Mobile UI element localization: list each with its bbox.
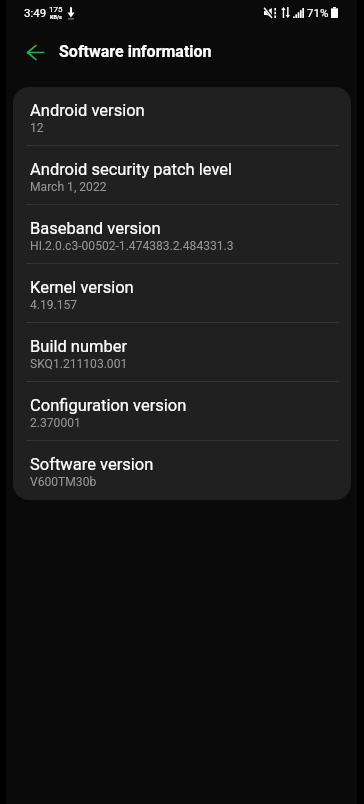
staticText: Baseband version — [30, 219, 161, 238]
staticText: 175 — [49, 5, 63, 14]
button[interactable]: Configuration version — [13, 382, 351, 441]
button[interactable]: Build number — [13, 323, 351, 382]
button[interactable]: Software version — [13, 441, 351, 500]
staticText: 3:49 — [24, 6, 47, 19]
staticText: Build number — [30, 337, 128, 356]
button[interactable]: Kernel version — [13, 264, 351, 323]
staticText: Kernel version — [30, 278, 134, 297]
button[interactable]: Baseband version — [13, 205, 351, 264]
button[interactable]: Navigate up — [17, 32, 53, 68]
staticText: Software version — [30, 455, 154, 474]
staticText: Configuration version — [30, 396, 187, 415]
button[interactable]: Android security patch level — [13, 146, 351, 205]
staticText: 2.370001 — [30, 416, 81, 430]
staticText: Software information — [59, 42, 212, 61]
staticText: Android version — [30, 101, 145, 120]
staticText: 71% — [307, 6, 329, 19]
staticText: 4.19.157 — [30, 298, 78, 312]
button[interactable]: Android version — [13, 87, 351, 146]
staticText: HI.2.0.c3-00502-1.474383.2.484331.3 — [30, 239, 234, 253]
staticText: March 1, 2022 — [30, 180, 107, 194]
staticText: V600TM30b — [30, 475, 97, 489]
staticText: 12 — [30, 121, 44, 135]
staticText: SKQ1.211103.001 — [30, 357, 128, 371]
staticText: Android security patch level — [30, 160, 233, 179]
staticText: KB/s — [50, 14, 62, 20]
